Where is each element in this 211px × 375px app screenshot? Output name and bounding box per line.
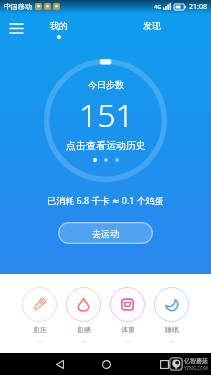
button[interactable]: 血糖	[66, 287, 101, 345]
button[interactable]: 去运动	[58, 222, 153, 244]
button[interactable]: Back	[46, 353, 74, 375]
staticText: 151	[79, 93, 134, 137]
button[interactable]: 血压	[22, 287, 57, 345]
staticText: 发现	[143, 20, 161, 31]
staticText: 血糖	[77, 325, 91, 334]
staticText: 睡眠	[165, 325, 179, 334]
staticText: 血压	[33, 325, 47, 334]
staticText: 已消耗 6.8 千卡 ≈ 0.1 个鸡蛋	[0, 194, 211, 206]
staticText: --	[82, 337, 86, 345]
button[interactable]: Home	[92, 353, 120, 375]
staticText: 21:08	[189, 2, 207, 12]
staticText: 我的	[50, 20, 68, 31]
staticText: YZMG.COM	[184, 365, 208, 371]
button[interactable]: Menu	[2, 14, 30, 42]
staticText: --	[38, 337, 42, 345]
staticText: 点击查看运动历史	[66, 139, 146, 152]
button[interactable]: 体重	[110, 287, 145, 345]
button[interactable]: 今日步数	[44, 59, 167, 182]
staticText: 体重	[121, 325, 135, 334]
button[interactable]: 睡眠	[154, 287, 189, 345]
staticText: 今日步数	[88, 79, 124, 90]
button[interactable]: Recents	[150, 353, 178, 375]
button[interactable]: 发现	[128, 14, 176, 42]
staticText: --	[170, 337, 174, 345]
staticText: 4G	[154, 3, 162, 10]
staticText: --	[126, 337, 130, 345]
staticText: 中国移动	[4, 2, 32, 11]
staticText: 去运动	[92, 228, 119, 239]
staticText: 亿智蘑菇	[184, 357, 208, 365]
button[interactable]: 我的	[35, 14, 83, 42]
